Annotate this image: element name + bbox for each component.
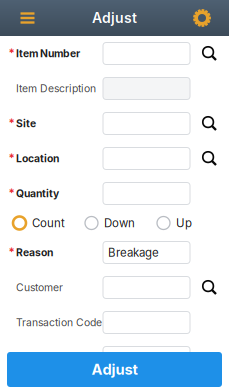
staticText: Up: [176, 216, 192, 230]
staticText: *: [8, 187, 14, 200]
button[interactable]: Up: [157, 216, 229, 230]
staticText: Adjust: [92, 9, 137, 26]
staticText: Adjust: [91, 361, 137, 378]
staticText: [8, 351, 11, 364]
button[interactable]: Settings: [175, 0, 229, 36]
staticText: Item Description: [16, 82, 96, 95]
button[interactable]: Search Site: [190, 106, 229, 141]
staticText: Reason: [16, 246, 53, 259]
staticText: Site: [16, 117, 36, 130]
staticText: Item Number: [16, 47, 80, 60]
staticText: *: [8, 47, 14, 60]
staticText: *: [8, 246, 14, 259]
button[interactable]: Adjust: [7, 352, 222, 387]
button[interactable]: Search Customer: [190, 270, 229, 305]
button[interactable]: Menu: [0, 0, 55, 36]
button[interactable]: Count: [13, 216, 85, 230]
staticText: Count: [32, 216, 65, 230]
staticText: *: [8, 117, 14, 130]
button[interactable]: Down: [85, 216, 157, 230]
button[interactable]: Search Item Number: [190, 36, 229, 71]
staticText: Location: [16, 152, 59, 165]
button[interactable]: Search Location: [190, 141, 229, 176]
staticText: Breakage: [108, 246, 159, 259]
staticText: Customer: [16, 281, 63, 294]
staticText: Quantity: [16, 187, 59, 200]
staticText: Transaction Code: [16, 316, 102, 329]
staticText: *: [8, 152, 14, 165]
staticText: Down: [104, 216, 135, 230]
